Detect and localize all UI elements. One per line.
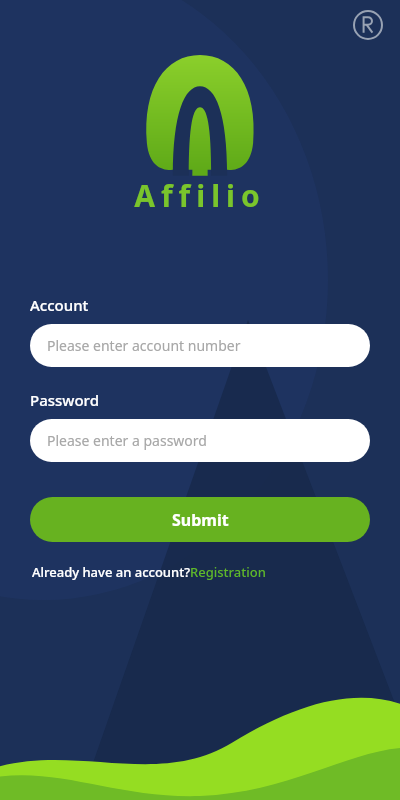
button[interactable]: Already have an account?	[32, 563, 266, 581]
staticText: Please enter account number	[47, 336, 241, 355]
staticText: Please enter a password	[47, 431, 207, 450]
staticText: Account	[30, 295, 89, 315]
staticText: Password	[30, 390, 99, 410]
button[interactable]: Please enter a password	[30, 419, 370, 462]
staticText: Submit	[172, 509, 229, 531]
button[interactable]: Registered trademark	[352, 9, 384, 41]
button[interactable]: Please enter account number	[30, 324, 370, 367]
staticText: Already have an account?	[32, 563, 190, 581]
staticText: Affilio	[134, 175, 266, 216]
staticText: Registration	[190, 563, 266, 581]
button[interactable]: Submit	[30, 497, 370, 542]
